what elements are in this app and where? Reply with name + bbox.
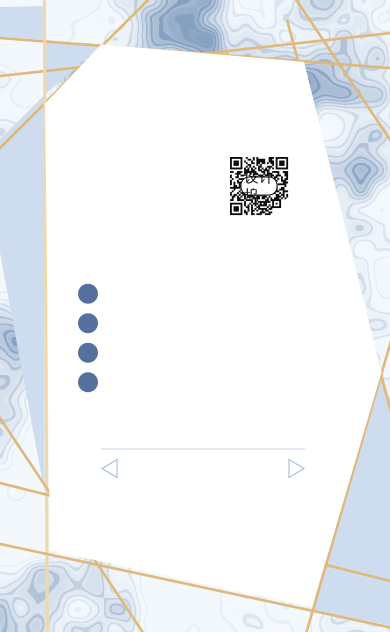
button[interactable]: Previous bbox=[101, 458, 119, 479]
staticText: 设计坞 bbox=[244, 168, 274, 204]
button[interactable]: Next bbox=[287, 458, 305, 479]
